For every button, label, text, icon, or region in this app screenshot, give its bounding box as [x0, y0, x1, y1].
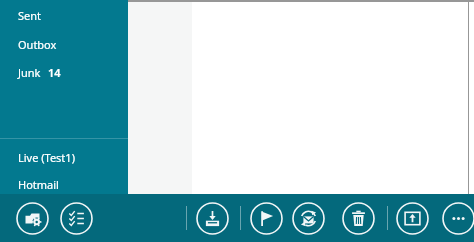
- button[interactable]: More options: [441, 201, 474, 236]
- staticText: Sent: [18, 8, 42, 23]
- button[interactable]: Outbox: [0, 33, 128, 55]
- button[interactable]: Junk: [0, 61, 128, 83]
- button[interactable]: Archive: [195, 201, 230, 236]
- staticText: 14: [48, 65, 61, 80]
- button[interactable]: Sent: [0, 4, 128, 26]
- staticText: Hotmail: [18, 177, 59, 192]
- staticText: Live (Test1): [18, 150, 75, 165]
- button[interactable]: Live (Test1): [0, 146, 128, 168]
- staticText: Junk: [18, 65, 41, 80]
- button[interactable]: Flag: [249, 201, 284, 236]
- button[interactable]: Delete: [341, 201, 376, 236]
- button[interactable]: Hotmail: [0, 173, 128, 195]
- button[interactable]: Manage folders: [15, 201, 50, 236]
- staticText: Outbox: [18, 37, 57, 52]
- button[interactable]: Select: [59, 201, 94, 236]
- button[interactable]: Sync mail: [291, 201, 326, 236]
- button[interactable]: Move: [395, 201, 430, 236]
